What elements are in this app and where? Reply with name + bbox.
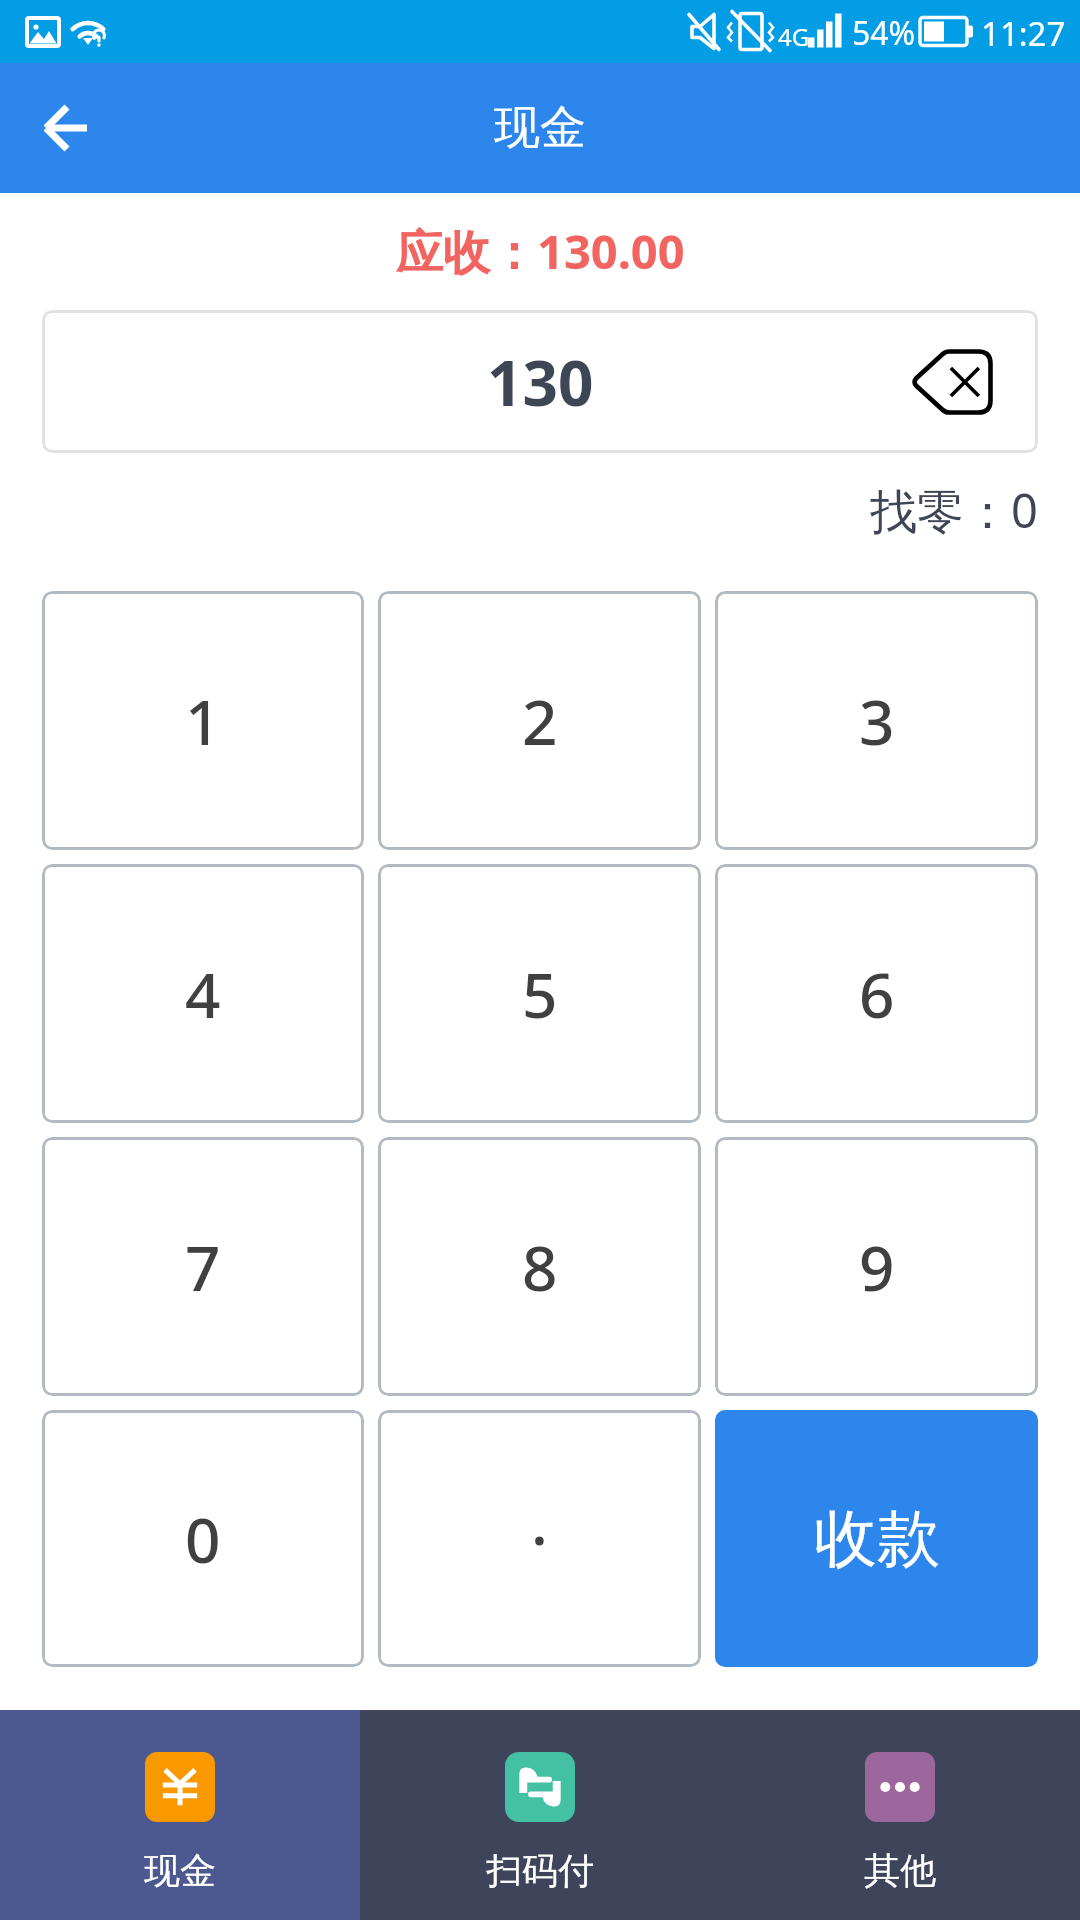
staticText: 130 bbox=[487, 340, 594, 424]
button[interactable]: Back bbox=[0, 63, 130, 193]
staticText: 4 bbox=[185, 952, 221, 1036]
staticText: 0 bbox=[185, 1497, 221, 1581]
button[interactable]: 8 bbox=[378, 1137, 701, 1396]
staticText: 54% bbox=[852, 11, 916, 55]
staticText: 收款 bbox=[814, 1499, 940, 1578]
button[interactable]: 2 bbox=[378, 591, 701, 850]
button[interactable]: 现金 bbox=[0, 1710, 360, 1920]
staticText: 4G bbox=[778, 20, 810, 53]
button[interactable]: . bbox=[378, 1410, 701, 1667]
staticText: 其他 bbox=[864, 1848, 936, 1893]
button[interactable]: 5 bbox=[378, 864, 701, 1123]
staticText: 5 bbox=[522, 952, 558, 1036]
staticText: 11:27 bbox=[981, 11, 1066, 56]
button[interactable]: Backspace bbox=[895, 327, 1009, 437]
staticText: 2 bbox=[522, 679, 558, 763]
button[interactable]: 6 bbox=[715, 864, 1038, 1123]
staticText: 找零：0 bbox=[870, 478, 1038, 542]
button[interactable]: 3 bbox=[715, 591, 1038, 850]
staticText: 8 bbox=[522, 1225, 558, 1309]
staticText: 现金 bbox=[494, 99, 586, 157]
button[interactable]: 9 bbox=[715, 1137, 1038, 1396]
button[interactable]: 4 bbox=[42, 864, 364, 1123]
button[interactable]: 收款 bbox=[715, 1410, 1038, 1667]
button[interactable]: 扫码付 bbox=[360, 1710, 720, 1920]
staticText: 7 bbox=[185, 1225, 221, 1309]
staticText: 扫码付 bbox=[486, 1848, 594, 1893]
staticText: 应收：130.00 bbox=[396, 219, 685, 283]
button[interactable]: 0 bbox=[42, 1410, 364, 1667]
button[interactable]: 1 bbox=[42, 591, 364, 850]
staticText: 9 bbox=[859, 1225, 895, 1309]
staticText: 6 bbox=[859, 952, 895, 1036]
button[interactable]: 7 bbox=[42, 1137, 364, 1396]
staticText: 1 bbox=[185, 679, 221, 763]
staticText: 现金 bbox=[144, 1848, 216, 1893]
staticText: . bbox=[531, 1479, 548, 1563]
button[interactable]: 其他 bbox=[720, 1710, 1080, 1920]
staticText: 3 bbox=[859, 679, 895, 763]
